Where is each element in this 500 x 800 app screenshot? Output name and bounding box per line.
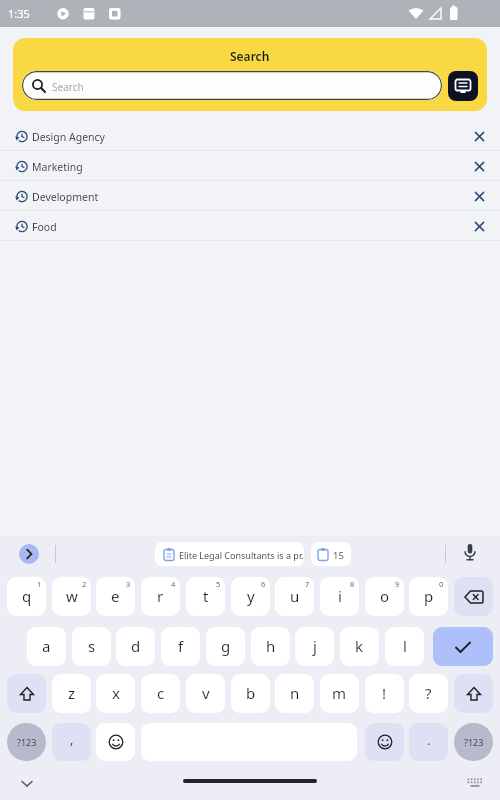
button[interactable]: q bbox=[7, 577, 46, 616]
button[interactable]: p bbox=[409, 577, 448, 616]
staticText: Search bbox=[230, 48, 270, 64]
button[interactable]: Development bbox=[0, 181, 500, 211]
staticText: 1 bbox=[37, 579, 42, 589]
staticText: q bbox=[22, 586, 32, 606]
staticText: 4 bbox=[171, 579, 176, 589]
button[interactable]: Search bbox=[22, 71, 442, 100]
button[interactable]: y bbox=[231, 577, 270, 616]
button[interactable]: k bbox=[340, 627, 379, 666]
button[interactable]: Elite Legal Consultants is a pr... bbox=[155, 542, 304, 566]
staticText: w bbox=[66, 586, 78, 606]
staticText: e bbox=[111, 586, 120, 606]
staticText: ?123 bbox=[17, 736, 37, 748]
staticText: h bbox=[266, 636, 276, 656]
button[interactable] bbox=[19, 544, 39, 564]
button[interactable]: ? bbox=[409, 674, 448, 713]
button[interactable] bbox=[96, 723, 135, 761]
button[interactable]: 15 bbox=[311, 542, 351, 566]
staticText: z bbox=[68, 683, 76, 703]
staticText: j bbox=[313, 636, 317, 656]
staticText: Development bbox=[32, 190, 99, 204]
staticText: i bbox=[338, 586, 342, 606]
button[interactable]: j bbox=[295, 627, 334, 666]
staticText: s bbox=[88, 636, 96, 656]
button[interactable] bbox=[7, 674, 46, 713]
staticText: n bbox=[290, 683, 300, 703]
button[interactable]: e bbox=[96, 577, 135, 616]
button[interactable]: v bbox=[186, 674, 225, 713]
button[interactable]: n bbox=[275, 674, 314, 713]
staticText: x bbox=[112, 683, 120, 703]
button[interactable] bbox=[474, 221, 485, 232]
button[interactable]: m bbox=[320, 674, 359, 713]
button[interactable] bbox=[474, 131, 485, 142]
button[interactable] bbox=[474, 161, 485, 172]
button[interactable]: d bbox=[116, 627, 155, 666]
button[interactable]: x bbox=[96, 674, 135, 713]
staticText: o bbox=[380, 586, 390, 606]
staticText: a bbox=[42, 636, 51, 656]
button[interactable]: t bbox=[186, 577, 225, 616]
staticText: 15 bbox=[333, 549, 344, 562]
button[interactable]: Food bbox=[0, 211, 500, 241]
staticText: Elite Legal Consultants is a pr... bbox=[179, 549, 304, 561]
staticText: 6 bbox=[261, 579, 266, 589]
staticText: Search bbox=[52, 80, 84, 94]
staticText: 5 bbox=[216, 579, 221, 589]
button[interactable]: f bbox=[161, 627, 200, 666]
staticText: y bbox=[247, 586, 255, 606]
button[interactable] bbox=[454, 674, 493, 713]
staticText: 9 bbox=[395, 579, 400, 589]
button[interactable]: h bbox=[251, 627, 290, 666]
staticText: t bbox=[203, 586, 209, 606]
staticText: b bbox=[246, 683, 256, 703]
staticText: r bbox=[157, 586, 164, 606]
button[interactable]: b bbox=[231, 674, 270, 713]
button[interactable]: ?123 bbox=[7, 723, 46, 761]
staticText: u bbox=[290, 586, 300, 606]
staticText: l bbox=[403, 636, 407, 656]
button[interactable]: . bbox=[409, 723, 448, 761]
staticText: ?123 bbox=[464, 736, 484, 748]
button[interactable]: Marketing bbox=[0, 151, 500, 181]
staticText: 0 bbox=[439, 579, 444, 589]
staticText: Marketing bbox=[32, 160, 83, 174]
staticText: 8 bbox=[350, 579, 355, 589]
button[interactable] bbox=[365, 723, 404, 761]
button[interactable] bbox=[433, 627, 493, 666]
button[interactable]: z bbox=[52, 674, 91, 713]
button[interactable]: g bbox=[206, 627, 245, 666]
staticText: f bbox=[178, 636, 184, 656]
button[interactable] bbox=[448, 71, 478, 101]
button[interactable]: i bbox=[320, 577, 359, 616]
button[interactable]: c bbox=[141, 674, 180, 713]
button[interactable]: ?123 bbox=[454, 723, 493, 761]
staticText: Food bbox=[32, 220, 57, 234]
button[interactable]: o bbox=[365, 577, 404, 616]
button[interactable]: l bbox=[385, 627, 424, 666]
staticText: ! bbox=[382, 683, 387, 703]
staticText: 3 bbox=[126, 579, 131, 589]
button[interactable]: a bbox=[27, 627, 66, 666]
button[interactable] bbox=[463, 543, 477, 565]
button[interactable]: ! bbox=[365, 674, 404, 713]
staticText: 7 bbox=[305, 579, 310, 589]
button[interactable]: Design Agency bbox=[0, 121, 500, 151]
button[interactable]: s bbox=[72, 627, 111, 666]
staticText: d bbox=[131, 636, 141, 656]
staticText: Design Agency bbox=[32, 130, 105, 144]
staticText: 1:35 bbox=[8, 6, 30, 21]
button[interactable] bbox=[454, 577, 493, 616]
staticText: ? bbox=[425, 683, 432, 703]
button[interactable]: r bbox=[141, 577, 180, 616]
staticText: c bbox=[157, 683, 165, 703]
button[interactable]: u bbox=[275, 577, 314, 616]
button[interactable]: w bbox=[52, 577, 91, 616]
staticText: m bbox=[332, 683, 347, 703]
staticText: k bbox=[355, 636, 364, 656]
button[interactable] bbox=[474, 191, 485, 202]
staticText: . bbox=[427, 731, 431, 749]
button[interactable]: , bbox=[52, 723, 91, 761]
staticText: , bbox=[70, 730, 74, 748]
